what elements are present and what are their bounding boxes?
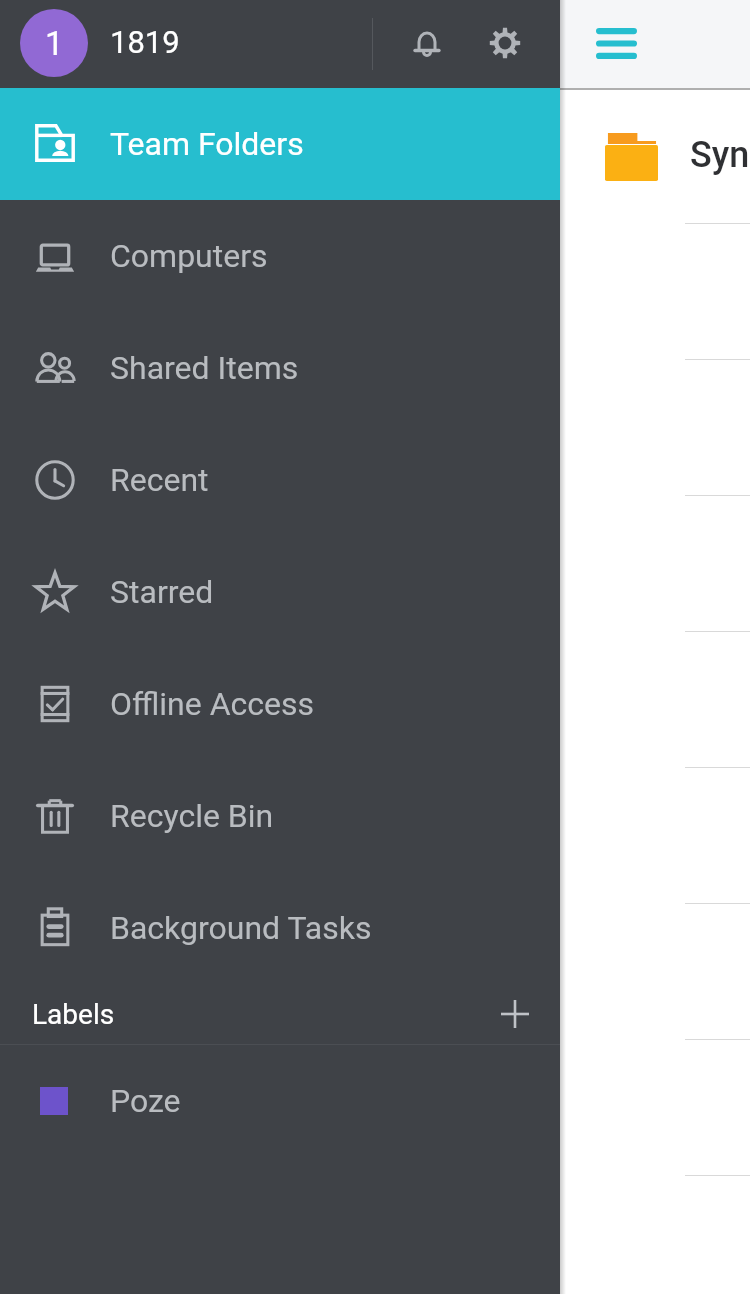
button[interactable]: Recent (0, 424, 560, 536)
button[interactable]: Notifications (399, 15, 455, 71)
button[interactable]: Sync (0, 90, 750, 223)
staticText: Recent (110, 461, 209, 499)
button[interactable]: Add label (489, 988, 541, 1040)
staticText: 1819 (110, 24, 180, 60)
button[interactable]: Menu (586, 13, 646, 73)
staticText: Sync (690, 134, 750, 176)
button[interactable]: 1 (20, 9, 88, 77)
button[interactable]: Settings (477, 15, 533, 71)
button[interactable]: Offline Access (0, 648, 560, 760)
button[interactable]: Team Folders (0, 88, 560, 200)
staticText: Computers (110, 237, 268, 275)
button[interactable]: Poze (0, 1045, 560, 1157)
staticText: Poze (110, 1082, 181, 1120)
staticText: Recycle Bin (110, 797, 274, 835)
button[interactable]: Starred (0, 536, 560, 648)
button[interactable]: Recycle Bin (0, 760, 560, 872)
staticText: Offline Access (110, 685, 315, 723)
staticText: Starred (110, 573, 214, 611)
button[interactable]: Computers (0, 200, 560, 312)
staticText: Labels (32, 998, 115, 1031)
staticText: Shared Items (110, 349, 299, 387)
button[interactable]: Shared Items (0, 312, 560, 424)
button[interactable]: Background Tasks (0, 872, 560, 984)
staticText: Team Folders (110, 125, 304, 163)
staticText: Background Tasks (110, 909, 372, 947)
staticText: 1 (45, 24, 64, 63)
